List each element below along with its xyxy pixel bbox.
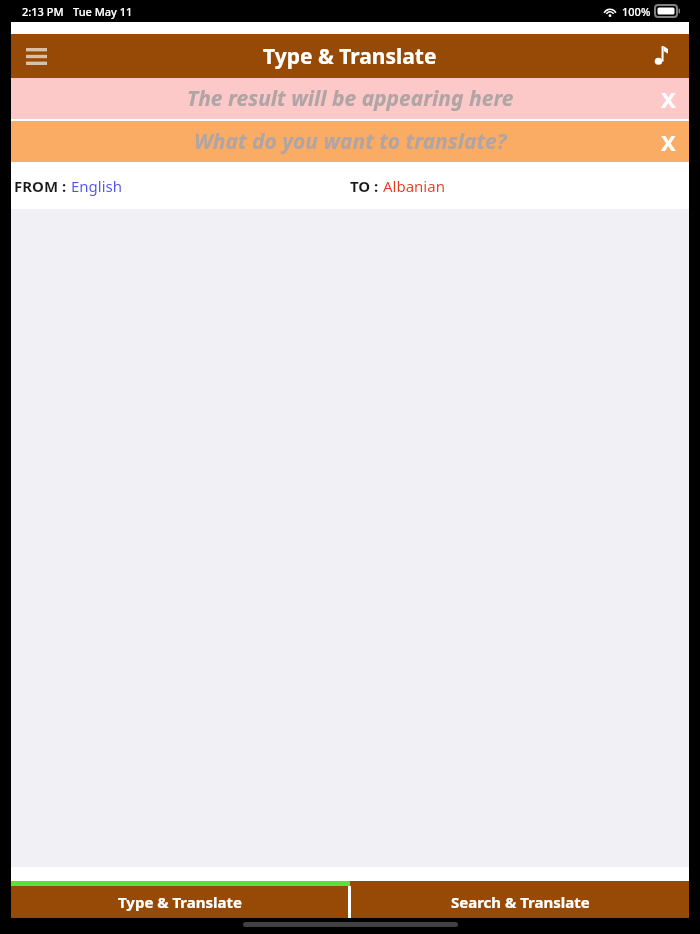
- button[interactable]: Menu: [15, 35, 57, 77]
- button[interactable]: TO :: [350, 176, 445, 196]
- button[interactable]: FROM :: [14, 176, 123, 196]
- staticText: Tue May 11: [73, 4, 133, 19]
- staticText: What do you want to translate?: [194, 127, 507, 156]
- staticText: English: [71, 176, 123, 196]
- button[interactable]: Clear input: [647, 121, 689, 162]
- staticText: FROM :: [14, 176, 71, 196]
- staticText: Type & Translate: [263, 42, 437, 71]
- staticText: 100%: [622, 4, 651, 19]
- button[interactable]: Clear result: [647, 78, 689, 119]
- staticText: Albanian: [383, 176, 445, 196]
- button[interactable]: Search & Translate: [351, 886, 689, 918]
- staticText: X: [661, 84, 676, 114]
- button[interactable]: The result will be appearing here: [11, 78, 689, 119]
- staticText: Type & Translate: [118, 892, 242, 912]
- staticText: X: [661, 127, 676, 157]
- staticText: 2:13 PM: [22, 4, 64, 19]
- button[interactable]: Type & Translate: [11, 886, 348, 918]
- staticText: The result will be appearing here: [187, 84, 514, 113]
- staticText: Search & Translate: [451, 892, 590, 912]
- staticText: TO :: [350, 176, 383, 196]
- button[interactable]: What do you want to translate?: [11, 121, 689, 162]
- button[interactable]: Sound: [639, 36, 679, 76]
